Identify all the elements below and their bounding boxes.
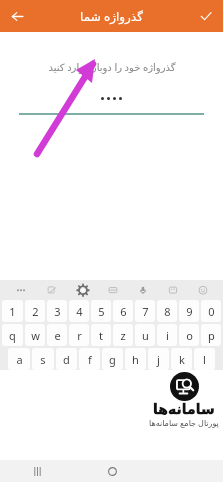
staticText: e — [54, 328, 61, 343]
button[interactable]: Voice input — [128, 280, 158, 300]
staticText: t — [99, 328, 103, 343]
staticText: j — [157, 352, 160, 367]
button[interactable]: 7 — [135, 300, 155, 322]
button[interactable]: 9 — [179, 300, 199, 322]
button[interactable]: h — [125, 348, 146, 370]
button[interactable]: o — [179, 324, 199, 346]
staticText: 0 — [208, 304, 215, 319]
button[interactable]: i — [157, 324, 177, 346]
button[interactable]: 0 — [201, 300, 221, 322]
button[interactable]: q — [2, 324, 23, 346]
button[interactable]: g — [102, 348, 123, 370]
button[interactable]: Emoji — [188, 280, 218, 300]
button[interactable]: 5 — [91, 300, 111, 322]
button[interactable]: l — [194, 348, 215, 370]
staticText: گذرواژه خود را دوباره وارد کنید — [48, 60, 176, 74]
staticText: 1 — [9, 304, 16, 319]
button[interactable]: 4 — [69, 300, 89, 322]
button[interactable]: 2 — [25, 300, 45, 322]
button[interactable]: d — [56, 348, 77, 370]
staticText: r — [77, 328, 82, 343]
button[interactable]: Recents — [0, 460, 74, 482]
staticText: u — [142, 328, 149, 343]
button[interactable]: Settings — [67, 280, 98, 300]
staticText: g — [109, 352, 116, 367]
button[interactable]: 1 — [2, 300, 23, 322]
staticText: 7 — [142, 304, 149, 319]
button[interactable]: e — [47, 324, 67, 346]
button[interactable]: Theme — [36, 280, 67, 300]
staticText: 3 — [54, 304, 61, 319]
staticText: a — [16, 352, 23, 367]
button[interactable]: z — [113, 324, 133, 346]
staticText: q — [9, 328, 16, 343]
button[interactable]: j — [148, 348, 169, 370]
staticText: i — [166, 328, 169, 343]
staticText: 5 — [98, 304, 105, 319]
staticText: 9 — [186, 304, 193, 319]
button[interactable]: More — [5, 280, 36, 300]
button[interactable]: t — [91, 324, 111, 346]
staticText: w — [31, 328, 40, 343]
button[interactable]: a — [8, 348, 30, 370]
staticText: 8 — [164, 304, 171, 319]
staticText: k — [179, 352, 185, 367]
button[interactable]: s — [32, 348, 54, 370]
staticText: h — [132, 352, 139, 367]
button[interactable]: 3 — [47, 300, 67, 322]
staticText: z — [120, 328, 126, 343]
staticText: o — [186, 328, 193, 343]
button[interactable]: k — [171, 348, 192, 370]
button[interactable]: r — [69, 324, 89, 346]
button[interactable]: 6 — [113, 300, 133, 322]
button[interactable]: Stickers — [158, 280, 188, 300]
staticText: سامانه‌ها — [153, 401, 215, 417]
button[interactable]: 8 — [157, 300, 177, 322]
button[interactable]: f — [79, 348, 100, 370]
staticText: l — [203, 352, 206, 367]
staticText: s — [40, 352, 46, 367]
staticText: f — [88, 352, 92, 367]
staticText: 2 — [32, 304, 39, 319]
button[interactable]: Back — [6, 5, 28, 27]
button[interactable]: Home — [75, 460, 149, 482]
button[interactable]: Confirm — [195, 5, 217, 27]
staticText: گذرواژه شما — [80, 8, 143, 24]
button[interactable]: u — [135, 324, 155, 346]
button[interactable]: Clipboard — [98, 280, 128, 300]
staticText: 6 — [120, 304, 127, 319]
staticText: d — [63, 352, 70, 367]
button[interactable]: w — [25, 324, 45, 346]
staticText: p — [208, 328, 215, 343]
button[interactable]: p — [201, 324, 221, 346]
staticText: 4 — [76, 304, 83, 319]
staticText: پورتال جامع سامانه‌ها — [149, 417, 219, 428]
